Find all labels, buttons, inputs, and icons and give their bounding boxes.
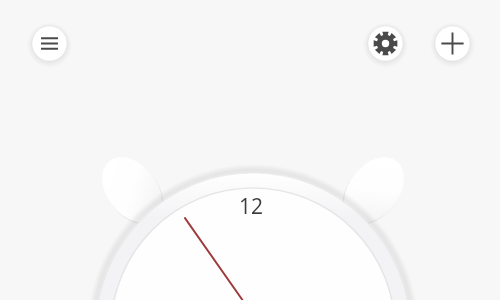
button[interactable]: Menu [26,20,73,67]
button[interactable]: Settings [362,20,409,67]
button[interactable]: Add alarm [429,20,476,67]
staticText: 12 [234,192,268,218]
